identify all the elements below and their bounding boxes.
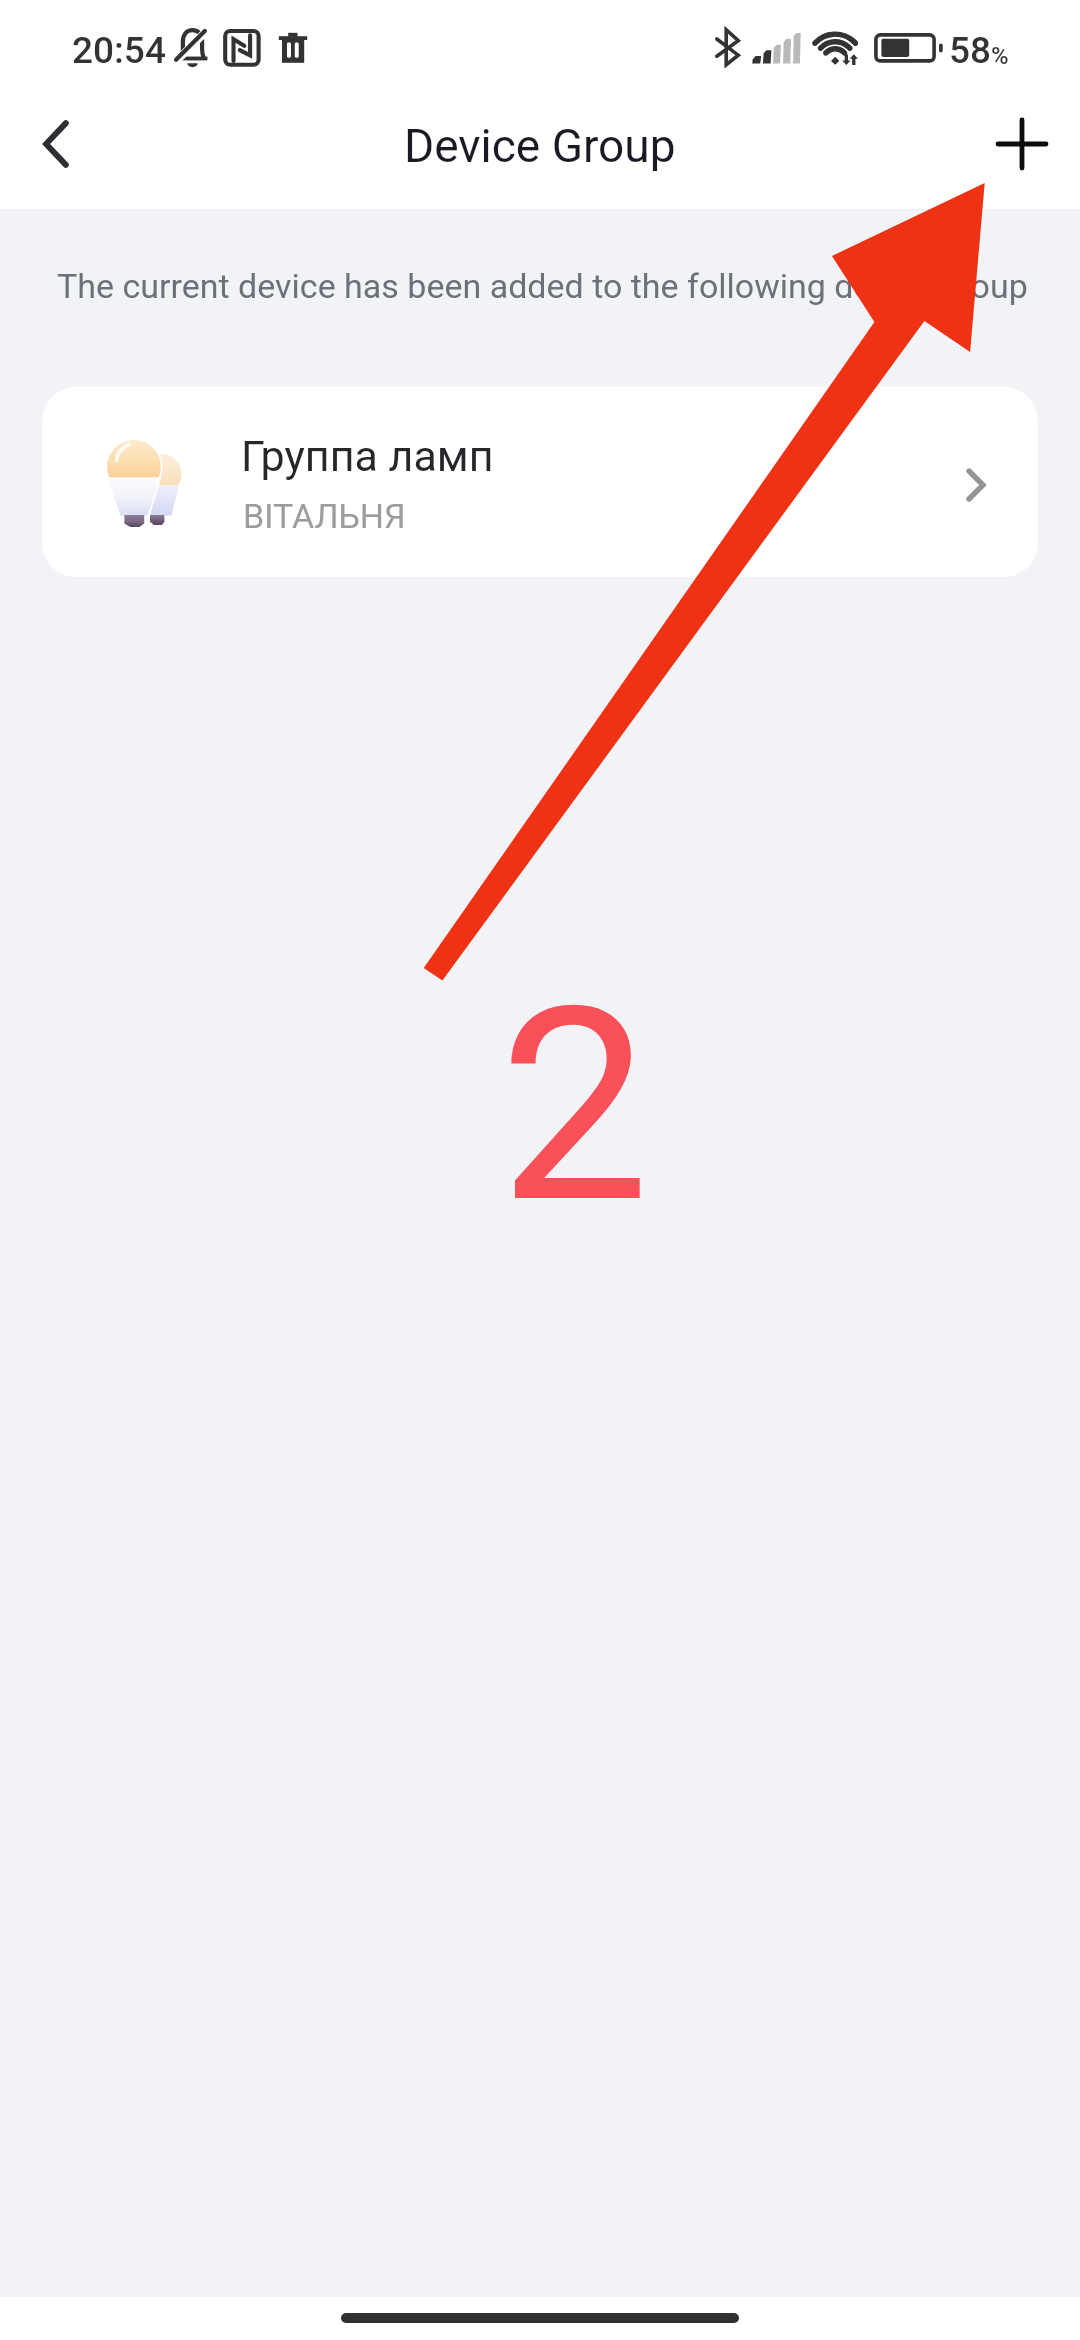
- staticText: 20:54: [72, 29, 166, 72]
- staticText: 2: [499, 949, 650, 1263]
- button[interactable]: Back: [4, 92, 108, 196]
- button[interactable]: Группа ламп: [42, 387, 1038, 577]
- staticText: %: [991, 42, 1009, 70]
- staticText: The current device has been added to the…: [57, 266, 1028, 306]
- button[interactable]: Add device group: [970, 92, 1074, 196]
- staticText: 58: [949, 29, 992, 72]
- staticText: Device Group: [404, 119, 676, 173]
- staticText: Группа ламп: [241, 431, 494, 481]
- staticText: ВІТАЛЬНЯ: [243, 496, 406, 536]
